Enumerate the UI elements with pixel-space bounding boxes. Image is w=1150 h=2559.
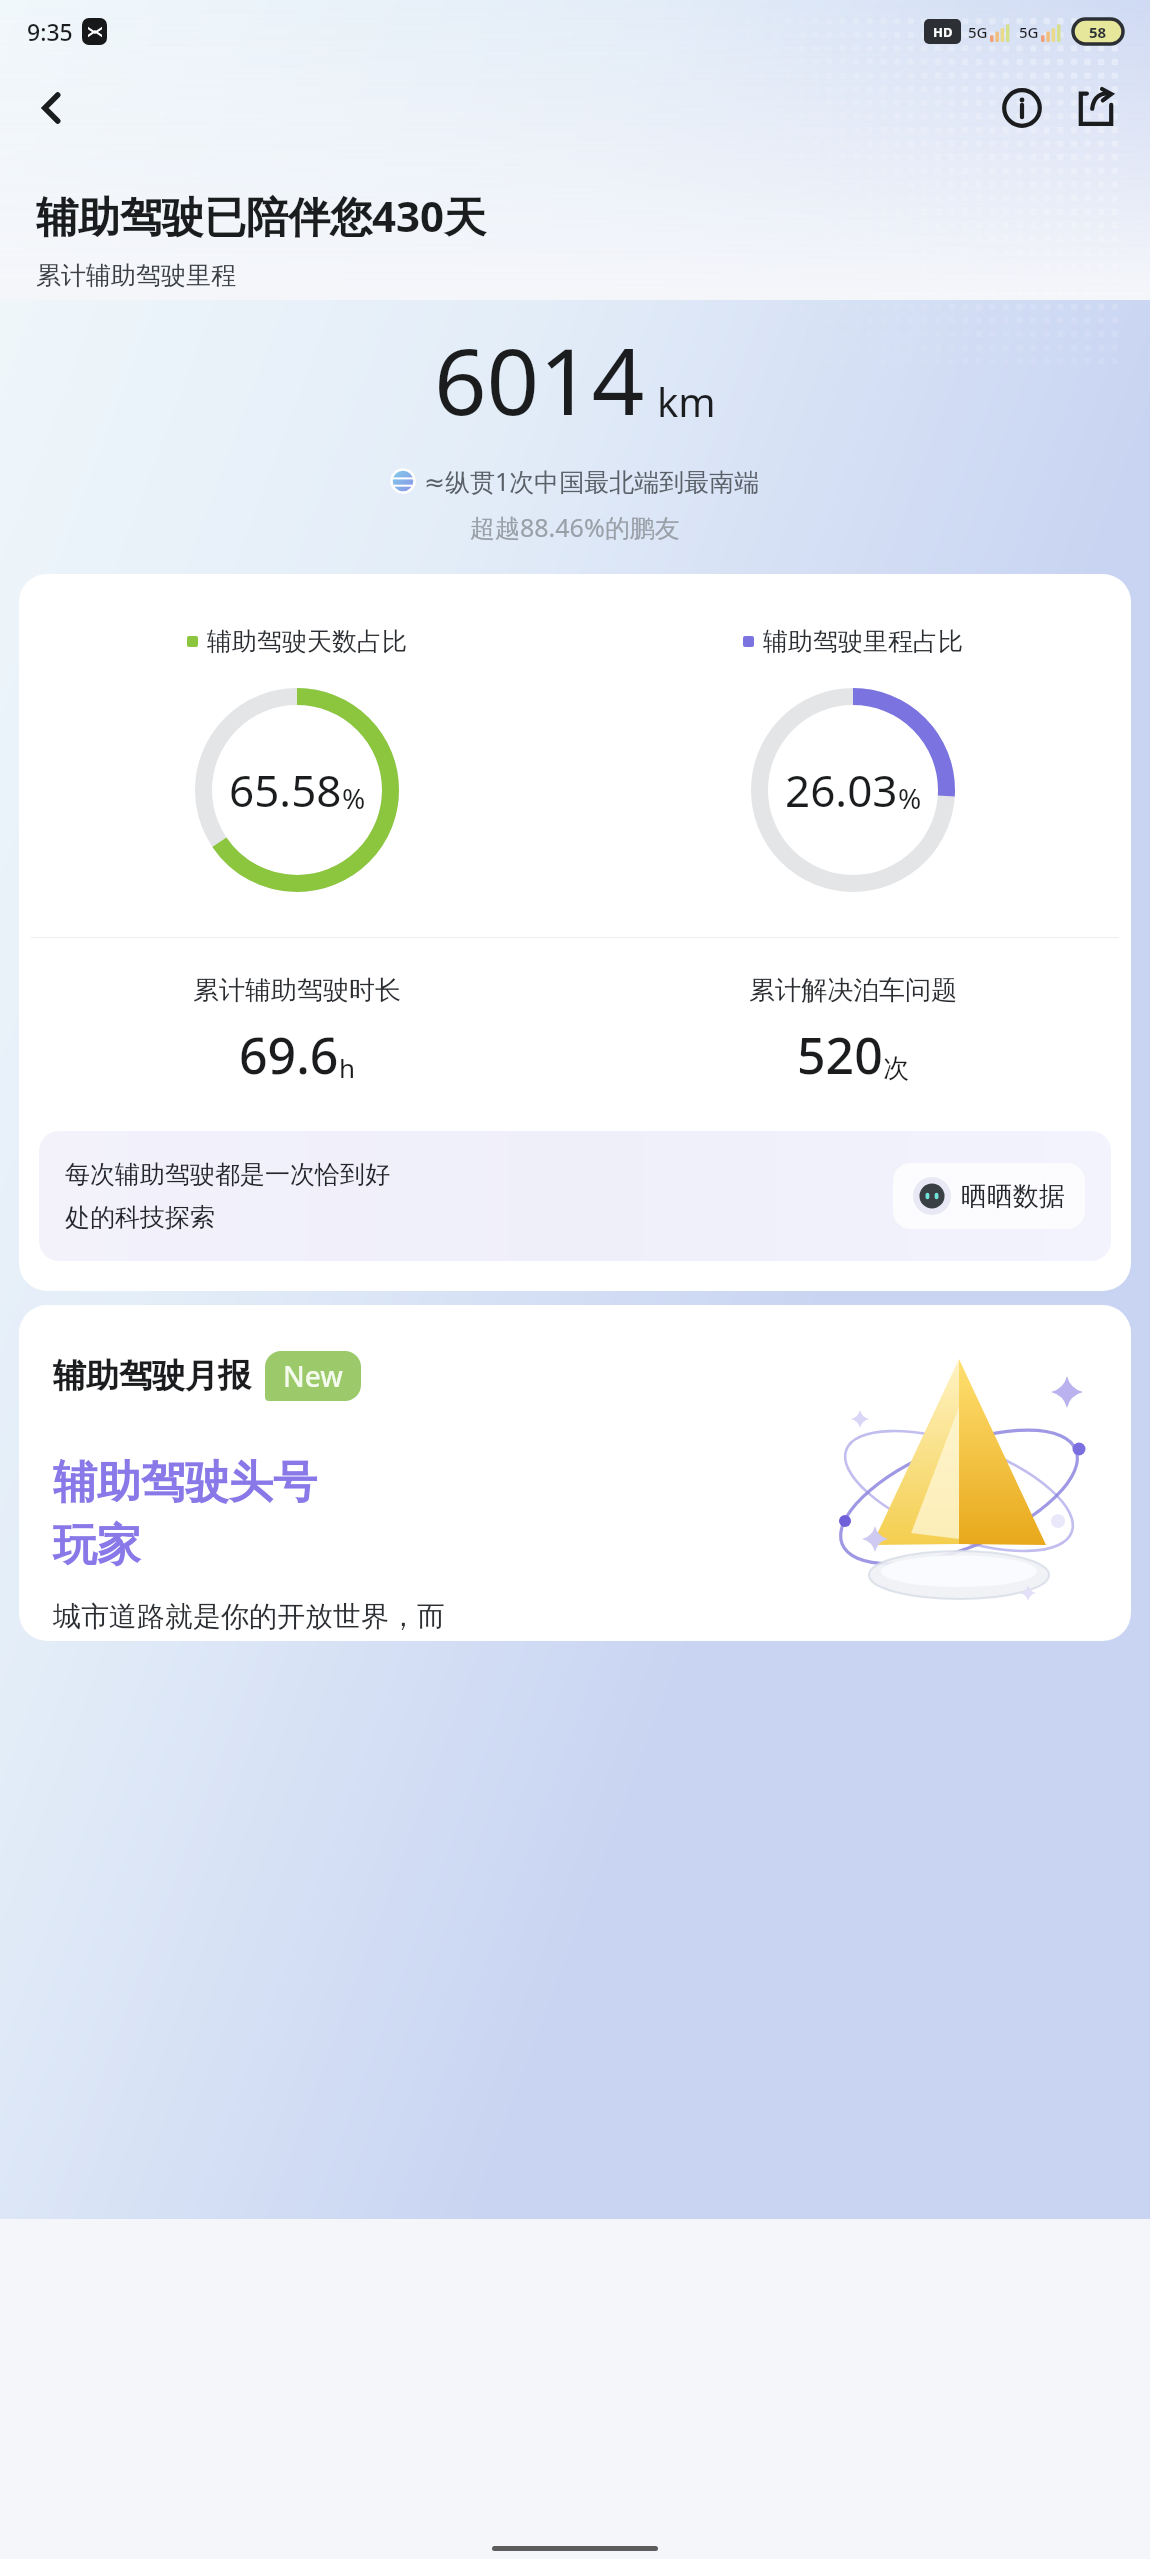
button[interactable]: Info <box>990 76 1054 140</box>
staticText: 58 <box>1089 22 1107 42</box>
staticText: 5G <box>968 22 988 42</box>
staticText: 69.6 <box>239 1021 339 1089</box>
staticText: 65.58 <box>229 760 342 820</box>
staticText: 26.03 <box>785 760 898 820</box>
staticText: 处的科技探索 <box>65 1202 215 1233</box>
button[interactable]: 辅助驾驶月报 <box>19 1305 1131 1641</box>
staticText: 每次辅助驾驶都是一次恰到好 <box>65 1159 390 1190</box>
staticText: 辅助驾驶月报 <box>53 1355 251 1397</box>
staticText: 次 <box>883 1052 909 1085</box>
staticText: 9:35 <box>27 16 73 47</box>
staticText: 累计解决泊车问题 <box>749 974 957 1007</box>
staticText: km <box>657 374 716 428</box>
staticText: 累计辅助驾驶里程 <box>36 260 236 291</box>
staticText: 辅助驾驶天数占比 <box>207 626 407 657</box>
staticText: 玩家 <box>53 1518 141 1573</box>
staticText: 辅助驾驶里程占比 <box>763 626 963 657</box>
staticText: HD <box>933 23 953 41</box>
staticText: 城市道路就是你的开放世界，而 <box>53 1599 445 1634</box>
button[interactable]: Share <box>1064 76 1128 140</box>
staticText: 5G <box>1019 22 1039 42</box>
staticText: % <box>342 779 366 817</box>
button[interactable]: 晒晒数据 <box>893 1163 1085 1229</box>
staticText: ≈纵贯1次中国最北端到最南端 <box>424 464 760 498</box>
staticText: 辅助驾驶已陪伴您430天 <box>36 187 487 244</box>
button[interactable]: Back <box>20 76 84 140</box>
staticText: 累计辅助驾驶时长 <box>193 974 401 1007</box>
staticText: New <box>283 1357 343 1395</box>
staticText: h <box>339 1050 356 1085</box>
staticText: 辅助驾驶头号 <box>53 1455 317 1510</box>
staticText: 晒晒数据 <box>961 1180 1065 1213</box>
staticText: 6014 <box>434 317 645 442</box>
staticText: % <box>898 779 922 817</box>
staticText: 超越88.46%的鹏友 <box>470 510 680 544</box>
staticText: 520 <box>797 1021 883 1089</box>
